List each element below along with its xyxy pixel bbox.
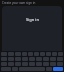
button[interactable] <box>46 52 51 56</box>
staticText: Sign in <box>26 17 39 22</box>
button[interactable] <box>22 52 27 56</box>
button[interactable] <box>43 62 49 66</box>
button[interactable] <box>29 57 35 61</box>
button[interactable] <box>50 57 56 61</box>
button[interactable] <box>46 67 52 71</box>
button[interactable] <box>15 62 21 66</box>
button[interactable] <box>43 57 49 61</box>
button[interactable] <box>57 62 63 66</box>
button[interactable] <box>53 67 63 71</box>
button[interactable] <box>8 62 14 66</box>
button[interactable] <box>22 62 28 66</box>
button[interactable] <box>36 62 42 66</box>
staticText: Create your own sign in <box>2 1 36 5</box>
button[interactable] <box>8 57 14 61</box>
button[interactable] <box>28 52 33 56</box>
button[interactable] <box>40 52 45 56</box>
button[interactable] <box>15 52 21 56</box>
button[interactable] <box>1 57 7 61</box>
button[interactable] <box>29 62 35 66</box>
button[interactable] <box>1 62 7 66</box>
button[interactable] <box>22 57 28 61</box>
button[interactable] <box>52 52 57 56</box>
button[interactable] <box>58 52 63 56</box>
button[interactable] <box>15 57 21 61</box>
button[interactable] <box>36 57 42 61</box>
button[interactable] <box>50 62 56 66</box>
button[interactable] <box>34 52 39 56</box>
button[interactable] <box>1 67 11 71</box>
button[interactable] <box>57 57 63 61</box>
button[interactable] <box>12 67 18 71</box>
button[interactable] <box>8 52 14 56</box>
button[interactable] <box>1 52 7 56</box>
